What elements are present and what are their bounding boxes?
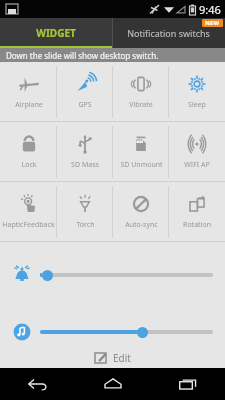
staticText: Lock bbox=[21, 160, 37, 170]
staticText: Auto-sync bbox=[125, 220, 158, 230]
button[interactable]: WIFI AP bbox=[169, 122, 225, 181]
staticText: NEW bbox=[205, 19, 220, 27]
button[interactable]: SD Mass bbox=[57, 122, 113, 181]
button[interactable]: Vibrate bbox=[113, 62, 169, 121]
staticText: HapticFeedback bbox=[2, 220, 55, 230]
button[interactable]: Sleep bbox=[169, 62, 225, 121]
button[interactable]: Edit bbox=[84, 347, 141, 368]
staticText: Vibrate bbox=[129, 100, 153, 110]
staticText: Down the slide will show desktop switch. bbox=[6, 50, 159, 61]
button[interactable] bbox=[12, 317, 213, 347]
staticText: Notification switchs bbox=[127, 27, 210, 39]
button[interactable]: Notification switchs bbox=[112, 18, 225, 48]
staticText: WIFI AP bbox=[184, 160, 210, 170]
button[interactable]: Airplane bbox=[0, 62, 57, 121]
button[interactable]: Back bbox=[0, 368, 75, 400]
staticText: WIDGET bbox=[36, 26, 76, 40]
button[interactable]: Rotation bbox=[169, 182, 225, 241]
staticText: SD Unmount bbox=[120, 160, 163, 170]
staticText: Sleep bbox=[188, 100, 206, 110]
button[interactable]: GPS bbox=[57, 62, 113, 121]
button[interactable]: SD Unmount bbox=[113, 122, 169, 181]
button[interactable]: WIDGET bbox=[0, 18, 112, 48]
staticText: Torch bbox=[76, 220, 95, 230]
button[interactable]: Recent apps bbox=[150, 368, 225, 400]
button[interactable]: Torch bbox=[57, 182, 113, 241]
staticText: Rotation bbox=[183, 220, 211, 230]
button[interactable]: Lock bbox=[0, 122, 57, 181]
button[interactable]: Home bbox=[75, 368, 150, 400]
staticText: SD Mass bbox=[71, 160, 99, 170]
staticText: Edit bbox=[113, 351, 131, 364]
button[interactable]: Auto-sync bbox=[113, 182, 169, 241]
staticText: 9:46 bbox=[199, 2, 221, 17]
staticText: Airplane bbox=[15, 100, 43, 110]
button[interactable]: HapticFeedback bbox=[0, 182, 57, 241]
staticText: GPS bbox=[78, 100, 92, 110]
button[interactable] bbox=[12, 260, 213, 290]
